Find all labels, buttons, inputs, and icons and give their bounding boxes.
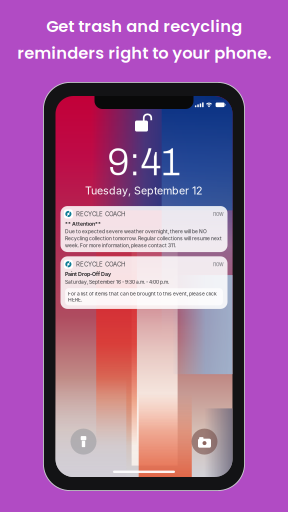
staticText: Get trash and recycling reminders right … — [17, 15, 271, 64]
staticText: now — [213, 210, 224, 217]
button[interactable]: Flashlight — [70, 429, 96, 455]
staticText: 9:41 — [107, 142, 180, 183]
staticText: For a list of items that can be brought … — [68, 291, 217, 303]
staticText: Saturday, September 16 - 9:30 a.m. - 4:0… — [65, 279, 169, 285]
staticText: ** Attention** — [65, 221, 101, 227]
staticText: RECYCLE COACH — [76, 261, 126, 268]
button[interactable]: RECYCLE COACH — [60, 256, 227, 309]
staticText: Paint Drop-Off Day — [65, 271, 111, 277]
button[interactable]: RECYCLE COACH — [60, 206, 227, 252]
staticText: RECYCLE COACH — [76, 210, 126, 218]
button[interactable]: Camera — [191, 429, 217, 455]
staticText: now — [213, 261, 224, 268]
staticText: Due to expected severe weather overnight… — [65, 228, 222, 248]
staticText: Tuesday, September 12 — [85, 184, 203, 197]
